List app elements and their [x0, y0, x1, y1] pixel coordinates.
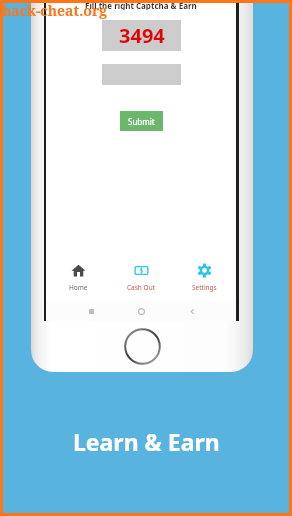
button[interactable]: Settings — [173, 255, 236, 292]
button[interactable]: Submit — [120, 111, 163, 131]
staticText: Settings — [192, 283, 217, 292]
staticText: 3494 — [119, 22, 165, 49]
staticText: Learn & Earn — [73, 426, 220, 457]
staticText: Home — [69, 283, 88, 292]
button[interactable]: Cash Out — [110, 255, 173, 292]
button[interactable]: Home — [46, 255, 110, 292]
button[interactable]: Home — [135, 305, 147, 317]
staticText: Fill the right Captcha & Earn — [85, 0, 197, 10]
button[interactable]: Recents — [85, 305, 97, 317]
staticText: Cash Out — [127, 283, 156, 292]
staticText: hack-cheat.org — [2, 1, 108, 20]
button[interactable]: Back — [186, 305, 198, 317]
staticText: Submit — [128, 116, 155, 127]
